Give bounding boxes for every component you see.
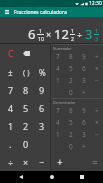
button[interactable]: × <box>18 153 34 171</box>
button[interactable]: ( ) <box>18 63 34 81</box>
staticText: 5 <box>69 64 73 73</box>
button[interactable]: 0 <box>64 86 77 98</box>
staticText: 12:30 <box>89 0 102 7</box>
staticText: − <box>39 156 45 168</box>
button[interactable]: − <box>34 153 50 171</box>
button[interactable]: % <box>34 63 50 81</box>
staticText: . <box>9 138 12 150</box>
button[interactable]: 5 <box>18 99 34 117</box>
button[interactable]: 6 <box>77 116 90 128</box>
staticText: 2 <box>69 130 73 139</box>
button[interactable]: + <box>77 140 90 152</box>
staticText: + <box>82 88 86 97</box>
button[interactable]: 0 <box>18 135 34 153</box>
staticText: Numerador <box>53 46 72 51</box>
button[interactable]: + <box>51 152 69 171</box>
staticText: 3 <box>39 120 45 132</box>
staticText: ÷ <box>95 106 99 115</box>
button[interactable]: Home <box>42 171 62 183</box>
staticText: 3 <box>82 76 86 85</box>
button[interactable]: Back <box>11 171 31 183</box>
staticText: + <box>57 155 63 169</box>
staticText: 12 <box>54 25 69 43</box>
button[interactable]: 1 <box>51 74 64 86</box>
staticText: 4 <box>56 64 60 73</box>
button[interactable]: = <box>86 152 103 171</box>
staticText: 6 <box>39 102 45 114</box>
button[interactable]: ÷ <box>90 51 103 62</box>
button[interactable]: 7 <box>51 105 64 116</box>
button[interactable]: Backspace <box>18 44 34 63</box>
staticText: Fracciones calculadora <box>14 9 67 16</box>
button[interactable]: 3 <box>77 128 90 140</box>
button[interactable]: ÷ <box>90 105 103 116</box>
button[interactable]: Menu <box>0 7 14 17</box>
button[interactable]: 2 <box>18 117 34 135</box>
staticText: 2 <box>23 120 29 132</box>
button[interactable]: 7 <box>51 51 64 62</box>
staticText: − <box>95 76 99 85</box>
button[interactable]: 6 <box>34 99 50 117</box>
button[interactable]: 3 <box>77 74 90 86</box>
staticText: 5 <box>23 102 29 114</box>
staticText: 0 <box>23 138 29 150</box>
staticText: 7 <box>56 52 60 61</box>
button[interactable]: × <box>90 62 103 74</box>
staticText: × <box>23 156 29 168</box>
staticText: 8 <box>69 52 73 61</box>
button[interactable]: C <box>3 44 18 63</box>
staticText: 3 <box>95 35 98 42</box>
button[interactable]: 3 <box>34 117 50 135</box>
button[interactable]: . <box>3 135 18 153</box>
button[interactable]: 0 <box>64 140 77 152</box>
staticText: 4 <box>56 118 60 127</box>
button[interactable]: + <box>77 86 90 98</box>
staticText: 9 <box>82 106 86 115</box>
button[interactable]: 1 <box>3 117 18 135</box>
staticText: 5 <box>69 118 73 127</box>
staticText: 2 <box>71 35 74 42</box>
button[interactable]: 9 <box>77 51 90 62</box>
button[interactable]: 8 <box>18 81 34 99</box>
button[interactable]: ± <box>3 63 18 81</box>
staticText: Denominador <box>53 100 76 105</box>
button[interactable]: 9 <box>34 81 50 99</box>
staticText: ( ) <box>23 67 30 77</box>
button[interactable]: − <box>90 128 103 140</box>
button[interactable]: 1 <box>51 128 64 140</box>
button[interactable]: 6 <box>77 62 90 74</box>
staticText: 0 <box>69 142 73 151</box>
staticText: 8 <box>23 84 29 96</box>
button[interactable]: 9 <box>77 105 90 116</box>
staticText: 3 <box>82 130 86 139</box>
staticText: 8 <box>69 106 73 115</box>
button[interactable]: ÷ <box>3 153 18 171</box>
button[interactable]: 2 <box>64 128 77 140</box>
staticText: 1 <box>8 120 14 132</box>
button[interactable]: 5 <box>64 116 77 128</box>
staticText: ÷ <box>8 156 14 168</box>
button[interactable]: 4 <box>51 62 64 74</box>
staticText: 1 <box>56 76 60 85</box>
staticText: 3 <box>85 25 93 43</box>
staticText: 4 <box>8 102 14 114</box>
button[interactable]: 4 <box>51 116 64 128</box>
button[interactable]: 8 <box>64 51 77 62</box>
button[interactable]: 7 <box>3 81 18 99</box>
button[interactable]: × <box>90 116 103 128</box>
staticText: 6 <box>28 25 36 43</box>
staticText: 10 <box>38 35 44 42</box>
staticText: 1 <box>71 27 74 34</box>
button[interactable]: 8 <box>64 105 77 116</box>
button[interactable]: − <box>90 74 103 86</box>
button[interactable]: 5 <box>64 62 77 74</box>
button[interactable]: 2 <box>64 74 77 86</box>
button[interactable]: 4 <box>3 99 18 117</box>
staticText: 0 <box>69 88 73 97</box>
button[interactable]: Recents <box>72 171 92 183</box>
